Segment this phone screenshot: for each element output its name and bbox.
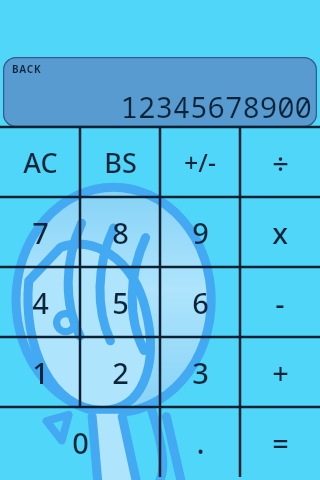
button[interactable]: 6 <box>160 267 240 337</box>
button[interactable]: . <box>160 407 240 477</box>
button[interactable]: 9 <box>160 197 240 267</box>
staticText: 2 <box>112 353 129 392</box>
staticText: 6 <box>192 283 209 322</box>
staticText: . <box>196 422 205 463</box>
staticText: 7 <box>32 213 49 252</box>
staticText: 0 <box>72 423 89 462</box>
button[interactable]: 5 <box>80 267 160 337</box>
staticText: = <box>272 423 289 462</box>
staticText: 4 <box>32 283 49 322</box>
button[interactable]: Add <box>240 337 320 407</box>
button[interactable]: Subtract <box>240 267 320 337</box>
staticText: - <box>275 283 285 322</box>
button[interactable]: BACK <box>3 57 42 76</box>
staticText: 8 <box>112 213 129 252</box>
button[interactable]: 8 <box>80 197 160 267</box>
staticText: x <box>272 213 288 252</box>
staticText: 1 <box>32 353 49 392</box>
button[interactable]: 3 <box>160 337 240 407</box>
staticText: 12345678900 <box>120 87 312 126</box>
button[interactable]: Equals <box>240 407 320 477</box>
staticText: BACK <box>12 62 42 76</box>
button[interactable]: BS <box>80 127 160 197</box>
button[interactable]: AC <box>0 127 80 197</box>
staticText: 3 <box>192 353 209 392</box>
button[interactable]: Toggle sign <box>160 127 240 197</box>
staticText: + <box>272 353 289 392</box>
button[interactable]: 4 <box>0 267 80 337</box>
staticText: BS <box>104 144 137 181</box>
button[interactable]: 0 <box>0 407 160 477</box>
staticText: +/- <box>184 145 216 179</box>
button[interactable]: Multiply <box>240 197 320 267</box>
button[interactable]: 2 <box>80 337 160 407</box>
staticText: ÷ <box>272 143 289 182</box>
button[interactable]: 7 <box>0 197 80 267</box>
button[interactable]: Divide <box>240 127 320 197</box>
staticText: AC <box>23 144 58 181</box>
staticText: 5 <box>112 283 129 322</box>
staticText: 9 <box>192 213 209 252</box>
button[interactable]: 1 <box>0 337 80 407</box>
